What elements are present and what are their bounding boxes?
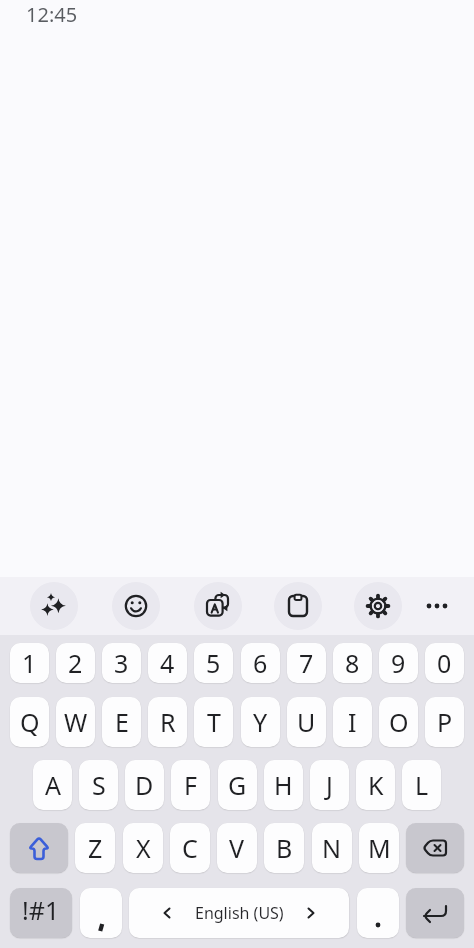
staticText: F (184, 768, 197, 802)
button[interactable] (357, 888, 399, 938)
button[interactable]: M (359, 823, 399, 873)
staticText: J (326, 768, 333, 802)
staticText: 6 (253, 646, 268, 680)
staticText: L (415, 768, 429, 802)
button[interactable]: 3 (102, 643, 141, 683)
button[interactable]: 1 (10, 643, 49, 683)
staticText: A (45, 768, 61, 802)
staticText: 8 (345, 646, 360, 680)
button[interactable]: 6 (241, 643, 280, 683)
button[interactable] (413, 582, 461, 630)
button[interactable]: Q (10, 697, 49, 747)
button[interactable]: 2 (56, 643, 95, 683)
button[interactable] (406, 823, 464, 873)
staticText: W (64, 705, 88, 739)
button[interactable]: E (102, 697, 141, 747)
button[interactable]: !#1 (10, 888, 72, 938)
staticText: 0 (437, 646, 452, 680)
button[interactable]: G (218, 760, 257, 810)
staticText: R (160, 705, 176, 739)
button[interactable] (354, 582, 402, 630)
staticText: 1 (22, 646, 37, 680)
staticText: T (207, 705, 221, 739)
staticText: C (182, 831, 198, 865)
button[interactable]: J (310, 760, 349, 810)
staticText: 7 (299, 646, 314, 680)
button[interactable]: B (264, 823, 304, 873)
staticText: X (136, 831, 151, 865)
button[interactable]: K (356, 760, 395, 810)
button[interactable]: 9 (379, 643, 418, 683)
button[interactable]: W (56, 697, 95, 747)
button[interactable] (10, 823, 68, 873)
staticText: D (135, 768, 154, 802)
staticText: H (274, 768, 293, 802)
button[interactable] (194, 582, 242, 630)
button[interactable]: Z (75, 823, 115, 873)
button[interactable]: A (33, 760, 72, 810)
staticText: 3 (114, 646, 129, 680)
button[interactable]: 7 (287, 643, 326, 683)
staticText: M (368, 831, 391, 865)
staticText: N (322, 831, 342, 865)
button[interactable]: T (194, 697, 233, 747)
button[interactable]: F (171, 760, 210, 810)
button[interactable]: S (79, 760, 118, 810)
button[interactable]: Y (241, 697, 280, 747)
staticText: Y (253, 705, 268, 739)
staticText: 4 (160, 646, 175, 680)
button[interactable] (274, 582, 322, 630)
staticText: 5 (206, 646, 221, 680)
staticText: !#1 (22, 893, 60, 927)
button[interactable]: R (148, 697, 187, 747)
button[interactable] (80, 888, 122, 938)
button[interactable]: V (217, 823, 257, 873)
staticText: 2 (68, 646, 83, 680)
staticText: V (229, 831, 245, 865)
button[interactable]: O (379, 697, 418, 747)
button[interactable]: 8 (333, 643, 372, 683)
staticText: P (437, 705, 453, 739)
button[interactable]: L (402, 760, 441, 810)
staticText: K (368, 768, 384, 802)
button[interactable]: 4 (148, 643, 187, 683)
staticText: 9 (391, 646, 406, 680)
staticText: B (276, 831, 293, 865)
button[interactable]: 5 (194, 643, 233, 683)
staticText: E (115, 705, 129, 739)
button[interactable]: English (US) (129, 888, 349, 938)
button[interactable]: N (312, 823, 352, 873)
staticText: Z (88, 831, 103, 865)
button[interactable]: P (425, 697, 464, 747)
button[interactable]: I (333, 697, 372, 747)
button[interactable] (112, 582, 160, 630)
button[interactable] (406, 888, 464, 938)
button[interactable]: C (170, 823, 210, 873)
button[interactable]: H (264, 760, 303, 810)
staticText: Q (20, 705, 40, 739)
staticText: S (92, 768, 106, 802)
staticText: G (228, 768, 247, 802)
button[interactable]: X (123, 823, 163, 873)
staticText: 12:45 (26, 1, 78, 28)
staticText: O (389, 705, 409, 739)
staticText: I (348, 705, 357, 739)
staticText: U (297, 705, 316, 739)
button[interactable]: 0 (425, 643, 464, 683)
button[interactable]: U (287, 697, 326, 747)
button[interactable] (30, 582, 78, 630)
staticText: English (US) (195, 902, 284, 924)
button[interactable]: D (125, 760, 164, 810)
